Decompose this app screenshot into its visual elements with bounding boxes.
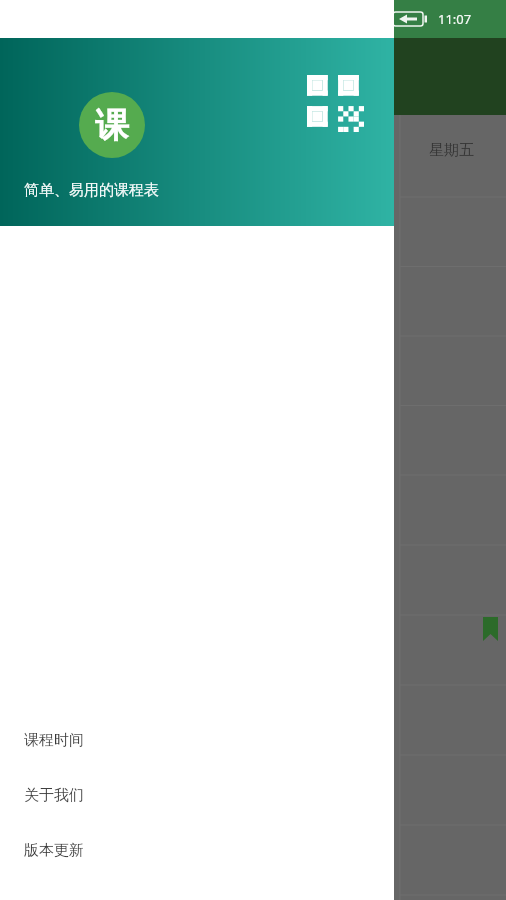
staticText: 课 [95,104,129,147]
button[interactable]: 课程时间 [0,713,394,768]
button[interactable]: 关于我们 [0,768,394,823]
button[interactable]: 版本更新 [0,823,394,878]
staticText: 课程时间 [24,731,84,750]
staticText: 简单、易用的课程表 [24,181,159,200]
staticText: 版本更新 [24,841,84,860]
button[interactable]: 扫一扫 [303,71,367,135]
staticText: 星期五 [429,141,474,160]
staticText: 关于我们 [24,786,84,805]
button[interactable]: 课 [79,92,145,158]
staticText: 11:07 [438,10,472,28]
